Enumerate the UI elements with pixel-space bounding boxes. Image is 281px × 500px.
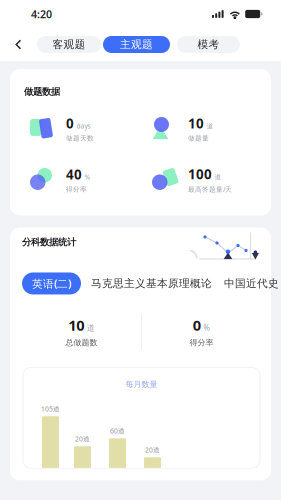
staticText: 0 [66,114,74,132]
staticText: 10 [68,315,84,335]
staticText: 主观题 [120,38,153,51]
staticText: 做题天数 [66,134,94,142]
staticText: 客观题 [52,38,85,51]
staticText: 20道 [75,434,90,443]
staticText: 得分率 [66,185,87,193]
staticText: % [84,172,90,181]
staticText: 做题量 [188,134,209,142]
staticText: 105道 [41,404,60,413]
staticText: 20道 [145,445,160,454]
staticText: 分科数据统计 [22,236,76,248]
staticText: 每月数量 [125,379,157,389]
staticText: 模考 [197,38,219,51]
staticText: 做题数据 [24,86,60,97]
staticText: 英语(二) [32,276,71,291]
button[interactable]: 英语(二) [22,272,81,294]
staticText: 4:20 [31,7,52,21]
button[interactable]: 客观题 [37,36,101,53]
staticText: 60道 [110,426,125,435]
staticText: 40 [66,165,82,183]
staticText: 总做题数 [65,338,97,348]
staticText: % [203,322,210,333]
staticText: 最高答题量/天 [188,185,232,194]
staticText: 0 [193,315,201,335]
button[interactable]: 模考 [177,36,240,53]
staticText: 100 [188,165,212,183]
staticText: 道 [214,173,221,181]
staticText: 中国近代史 [224,277,279,290]
button[interactable]: Back [7,30,29,58]
staticText: 道 [87,323,95,333]
button[interactable]: 中国近代史 [224,272,279,294]
button[interactable]: 马克思主义基本原理概论 [91,272,212,294]
staticText: 10 [188,114,204,132]
staticText: 马克思主义基本原理概论 [91,277,212,290]
staticText: days [76,121,90,130]
button[interactable]: 主观题 [103,36,170,53]
staticText: 得分率 [189,338,213,348]
staticText: 道 [206,122,213,130]
